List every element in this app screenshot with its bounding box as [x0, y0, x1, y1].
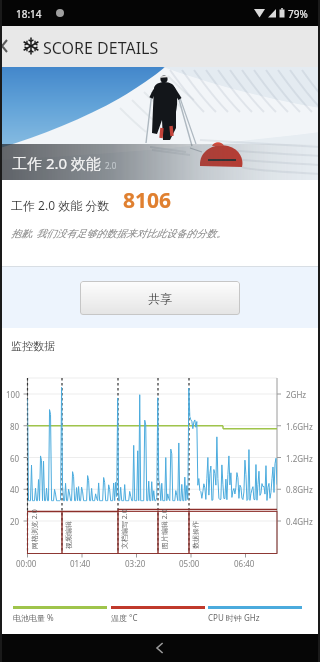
staticText: 100	[6, 389, 20, 400]
staticText: 06:40	[234, 558, 255, 569]
staticText: SCORE DETAILS	[43, 37, 159, 59]
staticText: CPU 时钟 GHz	[208, 612, 260, 623]
staticText: 00:00	[16, 558, 37, 569]
staticText: 电池电量 %	[13, 612, 54, 623]
staticText: 20	[10, 516, 20, 527]
staticText: 80	[10, 421, 20, 432]
staticText: 2GHz	[286, 389, 307, 400]
staticText: 图片编辑 2.0	[160, 507, 170, 549]
staticText: 05:00	[179, 558, 200, 569]
staticText: 监控数据	[11, 339, 55, 353]
staticText: 0.8GHz	[286, 484, 313, 495]
staticText: 工作 2.0 效能 分数	[11, 197, 110, 213]
staticText: 数据操作	[191, 507, 201, 549]
staticText: 18:14	[16, 7, 42, 21]
staticText: 1.2GHz	[286, 453, 313, 464]
staticText: 共享	[148, 291, 172, 306]
staticText: 0.4GHz	[286, 516, 313, 527]
staticText: 79%	[288, 7, 308, 21]
staticText: 60	[10, 453, 20, 464]
button[interactable]: 共享	[80, 281, 240, 315]
staticText: 温度 °C	[111, 612, 138, 623]
button[interactable]: Back	[140, 634, 180, 662]
staticText: 网格浏览 2.0	[30, 507, 40, 549]
staticText: 01:40	[70, 558, 91, 569]
staticText: 03:20	[125, 558, 146, 569]
button[interactable]: Back	[0, 34, 16, 58]
staticText: 2.0	[105, 160, 117, 171]
staticText: 8106	[123, 186, 172, 215]
staticText: 视频编辑	[64, 507, 74, 549]
staticText: 40	[10, 484, 20, 495]
staticText: 抱歉, 我们没有足够的数据来对比此设备的分数。	[11, 226, 227, 240]
staticText: 工作 2.0 效能	[12, 153, 101, 173]
staticText: 1.6GHz	[286, 421, 313, 432]
staticText: 文档编写 2.0	[120, 507, 130, 549]
